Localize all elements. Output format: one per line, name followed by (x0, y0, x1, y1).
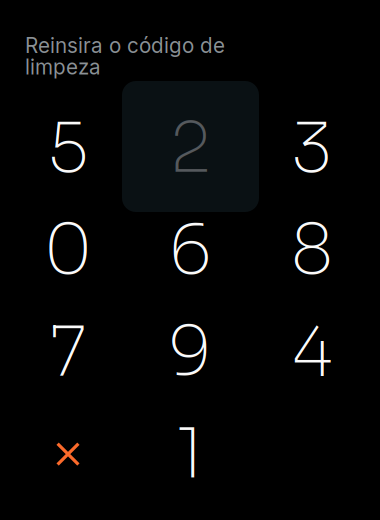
staticText: 4 (291, 309, 333, 395)
button[interactable]: 3 (251, 98, 373, 200)
staticText: 8 (291, 208, 333, 293)
staticText: 2 (169, 106, 210, 192)
staticText: 3 (291, 106, 332, 192)
button[interactable]: 1 (129, 403, 251, 505)
button[interactable]: 0 (7, 200, 129, 301)
staticText: 9 (168, 309, 212, 395)
button[interactable]: 9 (129, 301, 251, 403)
staticText: 1 (176, 411, 204, 497)
staticText: 6 (168, 208, 212, 293)
staticText: Reinsira o código de limpeza (25, 33, 225, 79)
staticText: 7 (49, 309, 87, 395)
button[interactable]: 6 (129, 200, 251, 301)
button[interactable]: 8 (251, 200, 373, 301)
button[interactable]: 7 (7, 301, 129, 403)
button[interactable]: 2 (129, 98, 251, 200)
button[interactable]: Delete (7, 403, 129, 505)
staticText: 5 (47, 106, 88, 192)
button[interactable]: 5 (7, 98, 129, 200)
staticText: 0 (43, 208, 92, 293)
button[interactable]: 4 (251, 301, 373, 403)
